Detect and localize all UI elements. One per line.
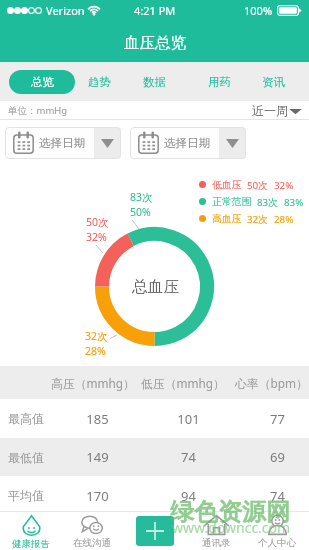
button[interactable]: 在线沟通 [64,511,120,550]
staticText: 83次 50% [130,190,153,219]
staticText: Verizon [46,3,85,18]
staticText: 个人中心 [258,537,296,549]
staticText: 近一周 [252,103,288,118]
staticText: 83次 [257,196,279,207]
staticText: 83% [284,196,304,207]
button[interactable]: 健康报告 [3,511,59,550]
staticText: 单位：mmHg [8,104,68,117]
staticText: 资讯 [262,75,285,89]
staticText: 选择日期 [164,136,210,150]
staticText: 最低值 [8,450,44,465]
staticText: 94 [181,487,196,505]
staticText: 低血压 [212,179,242,190]
button[interactable]: 数据 [132,70,176,94]
staticText: 77 [270,410,285,428]
button[interactable]: 总览 [9,70,75,94]
button[interactable]: 个人中心 [249,511,305,550]
staticText: 高血压 [212,213,242,224]
staticText: 健康报告 [12,538,50,550]
staticText: 74 [181,448,196,466]
button[interactable]: 添加 [136,516,174,546]
staticText: 数据 [143,75,166,89]
staticText: 101 [177,410,200,428]
staticText: 最高值 [8,411,44,426]
button[interactable]: 选择日期 [130,127,246,159]
staticText: 选择日期 [39,136,85,150]
staticText: 趋势 [88,75,111,89]
button[interactable]: 通讯录 [188,511,244,550]
staticText: 50次 [247,179,269,190]
staticText: 50次 32% [86,215,109,244]
staticText: www.downcc.com [172,518,291,537]
staticText: 100% [244,3,273,18]
staticText: 平均值 [8,488,44,503]
staticText: 149 [86,448,109,466]
staticText: 总血压 [132,277,180,297]
staticText: 170 [86,487,109,505]
staticText: 32次 [247,213,269,224]
staticText: 通讯录 [202,537,231,549]
staticText: 28% [274,213,294,224]
staticText: 32% [274,179,294,190]
button[interactable]: 趋势 [77,70,121,94]
staticText: 绿色资源网 [170,497,290,527]
button[interactable]: 用药 [197,70,241,94]
button[interactable]: 资讯 [251,70,295,94]
staticText: 185 [86,410,109,428]
staticText: 总览 [31,75,54,89]
staticText: 74 [270,487,285,505]
staticText: 正常范围 [212,196,252,207]
staticText: 用药 [208,75,231,89]
button[interactable]: 选择日期 [5,127,121,159]
button[interactable]: 近一周 [252,103,303,118]
staticText: 32次 28% [85,329,108,358]
staticText: 低压（mmhg） [141,375,225,391]
staticText: 4:21 PM [134,3,176,18]
staticText: 心率（bpm） [235,375,308,391]
staticText: 血压总览 [124,33,186,53]
staticText: 在线沟通 [73,537,111,549]
staticText: 高压（mmhg） [51,375,135,391]
staticText: 69 [270,448,285,466]
